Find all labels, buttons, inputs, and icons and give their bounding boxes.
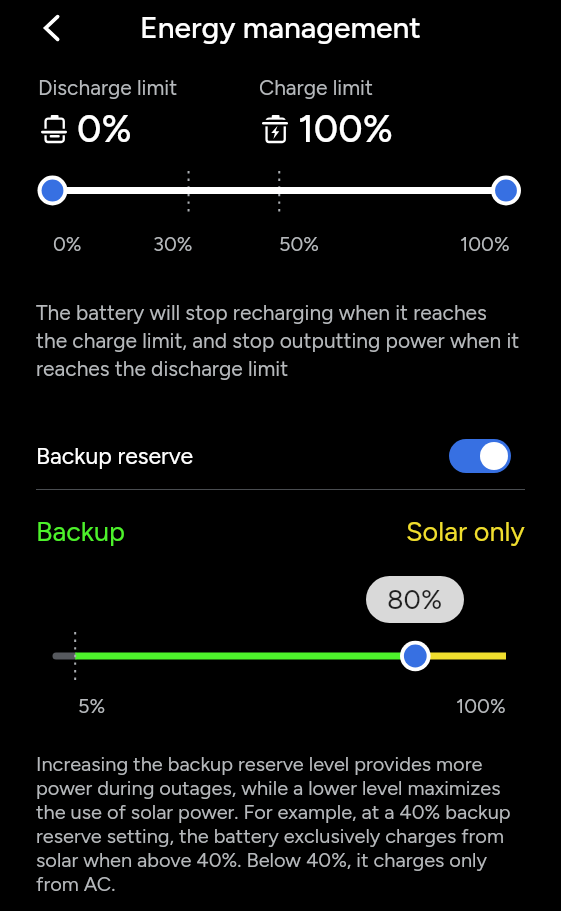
staticText: Charge limit: [259, 75, 373, 100]
button[interactable]: Backup reserve slider: [0, 630, 561, 682]
staticText: Energy management: [140, 9, 421, 45]
staticText: Solar only: [406, 515, 525, 547]
staticText: The battery will stop recharging when it…: [36, 300, 520, 381]
staticText: 100%: [298, 106, 393, 152]
staticText: 100%: [460, 232, 510, 256]
staticText: 5%: [78, 694, 106, 718]
staticText: 100%: [456, 694, 506, 718]
button[interactable]: 80%: [366, 576, 464, 623]
staticText: Increasing the backup reserve level prov…: [36, 752, 518, 896]
button[interactable]: Charge range slider: [0, 168, 561, 214]
staticText: Backup reserve: [36, 442, 449, 470]
staticText: 0%: [77, 106, 132, 152]
button[interactable]: Back: [29, 4, 77, 52]
button[interactable]: Backup reserve: [0, 426, 561, 486]
staticText: 50%: [279, 232, 320, 256]
staticText: 30%: [153, 232, 193, 256]
staticText: 80%: [387, 583, 443, 615]
staticText: Backup: [36, 515, 125, 547]
staticText: 0%: [53, 232, 82, 256]
staticText: Discharge limit: [38, 75, 178, 100]
